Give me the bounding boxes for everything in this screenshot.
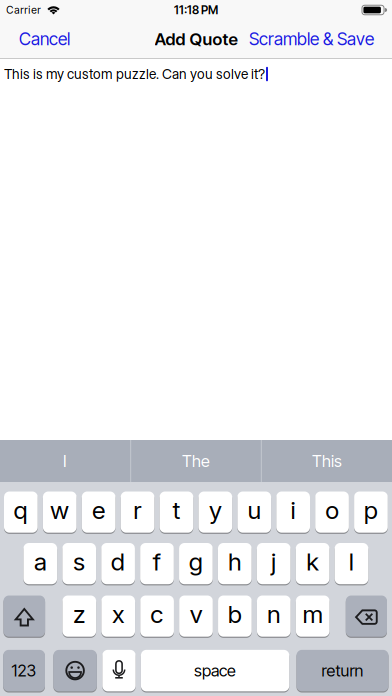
staticText: g: [188, 547, 203, 576]
staticText: w: [50, 495, 70, 525]
button[interactable]: f: [140, 542, 174, 585]
staticText: This: [312, 451, 342, 471]
button[interactable]: g: [179, 542, 213, 585]
button[interactable]: space: [141, 649, 289, 692]
staticText: e: [92, 495, 106, 525]
button[interactable]: The: [131, 440, 261, 482]
staticText: 11:18 PM: [174, 3, 218, 17]
staticText: Add Quote: [154, 29, 237, 49]
staticText: space: [194, 661, 236, 680]
staticText: n: [267, 599, 281, 629]
button[interactable]: v: [179, 595, 213, 637]
button[interactable]: Numbers: [3, 649, 45, 692]
button[interactable]: u: [237, 491, 271, 533]
staticText: m: [302, 599, 323, 629]
staticText: l: [348, 547, 354, 576]
button[interactable]: q: [4, 491, 38, 533]
button[interactable]: e: [82, 491, 115, 533]
button[interactable]: This: [262, 440, 392, 482]
button[interactable]: Emoji: [53, 649, 97, 692]
staticText: y: [209, 495, 222, 525]
button[interactable]: h: [218, 542, 252, 585]
staticText: r: [133, 495, 142, 525]
staticText: k: [306, 547, 319, 576]
staticText: v: [189, 599, 202, 629]
button[interactable]: a: [23, 542, 57, 585]
button[interactable]: Shift: [3, 595, 45, 637]
button[interactable]: k: [296, 542, 329, 585]
button[interactable]: c: [140, 595, 174, 637]
staticText: i: [290, 495, 296, 525]
staticText: u: [247, 495, 261, 525]
button[interactable]: y: [198, 491, 232, 533]
button[interactable]: r: [121, 491, 154, 533]
staticText: I: [63, 451, 67, 471]
staticText: 123: [12, 661, 37, 680]
staticText: This is my custom puzzle. Can you solve …: [4, 66, 265, 82]
button[interactable]: p: [354, 491, 388, 533]
button[interactable]: d: [101, 542, 135, 585]
button[interactable]: j: [257, 542, 290, 585]
button[interactable]: Dictate: [102, 649, 136, 692]
button[interactable]: m: [296, 595, 329, 637]
button[interactable]: s: [62, 542, 96, 585]
button[interactable]: o: [315, 491, 349, 533]
button[interactable]: Scramble & Save: [249, 28, 374, 50]
staticText: Scramble & Save: [249, 28, 374, 50]
staticText: t: [172, 495, 180, 525]
button[interactable]: n: [257, 595, 291, 637]
button[interactable]: b: [218, 595, 252, 637]
button[interactable]: Cancel: [19, 28, 70, 50]
button[interactable]: i: [276, 491, 310, 533]
button[interactable]: t: [160, 491, 193, 533]
staticText: f: [152, 547, 161, 576]
staticText: h: [228, 547, 242, 576]
staticText: z: [73, 599, 86, 629]
staticText: p: [363, 495, 378, 525]
staticText: Cancel: [19, 28, 70, 50]
staticText: return: [321, 661, 363, 680]
staticText: x: [112, 599, 125, 629]
staticText: j: [271, 547, 277, 576]
staticText: The: [182, 451, 210, 471]
button[interactable]: l: [335, 542, 368, 585]
staticText: a: [34, 547, 47, 576]
button[interactable]: I: [0, 440, 130, 482]
staticText: b: [227, 599, 242, 629]
staticText: d: [111, 547, 126, 576]
staticText: o: [325, 495, 339, 525]
button[interactable]: z: [62, 595, 96, 637]
staticText: q: [13, 495, 28, 525]
staticText: s: [73, 547, 86, 576]
staticText: Carrier: [6, 4, 41, 16]
button[interactable]: w: [43, 491, 77, 533]
staticText: c: [150, 599, 164, 629]
button[interactable]: return: [296, 649, 388, 692]
button[interactable]: x: [101, 595, 135, 637]
button[interactable]: Delete: [346, 595, 387, 637]
